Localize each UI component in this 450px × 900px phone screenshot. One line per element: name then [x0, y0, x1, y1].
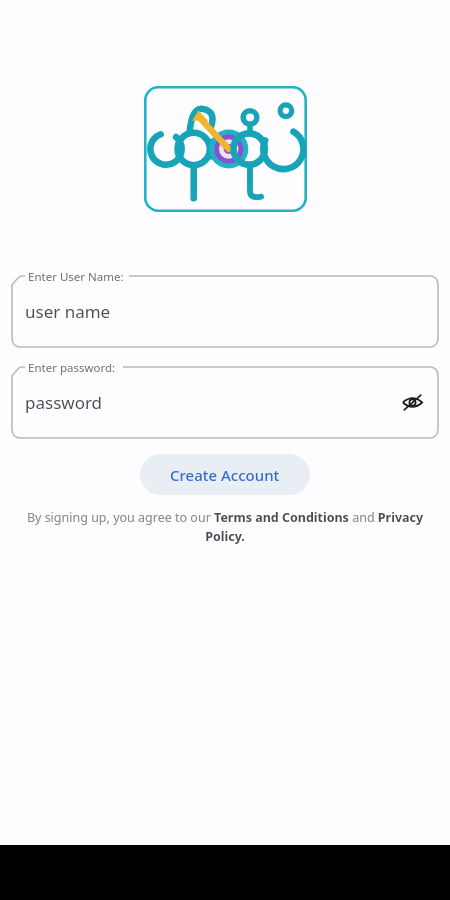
staticText: Create Account [170, 465, 280, 485]
staticText: user name [25, 300, 111, 323]
staticText: Enter password: [28, 360, 116, 376]
staticText: password [25, 391, 103, 414]
button[interactable]: Enter User Name: [11, 268, 439, 348]
button[interactable]: Show password [397, 387, 427, 417]
button[interactable]: Create Account [140, 454, 310, 495]
staticText: By signing up, you agree to our Terms an… [16, 509, 434, 545]
button[interactable]: Enter password: [11, 359, 439, 439]
staticText: Enter User Name: [28, 269, 124, 285]
